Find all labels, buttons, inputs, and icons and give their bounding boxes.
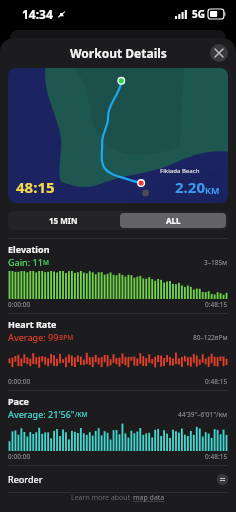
- staticText: Elevation: [8, 243, 50, 255]
- staticText: /KM: [75, 410, 88, 419]
- staticText: Pace: [8, 395, 29, 407]
- staticText: BPM: [59, 333, 74, 342]
- staticText: Gain: 11: [8, 256, 43, 268]
- button[interactable]: ALL: [120, 213, 226, 228]
- staticText: Heart Rate: [8, 318, 57, 330]
- button[interactable]: Close: [210, 44, 228, 62]
- staticText: 15 MIN: [49, 215, 78, 226]
- staticText: 0:48:15: [205, 377, 228, 386]
- staticText: 0:48:15: [205, 300, 228, 309]
- staticText: 5G: [192, 7, 205, 21]
- staticText: Reorder: [8, 473, 43, 485]
- staticText: 48:15: [16, 177, 55, 197]
- staticText: 44'39"–6'01"/км: [178, 410, 228, 419]
- staticText: 3–185м: [204, 258, 228, 267]
- staticText: map data: [133, 493, 165, 503]
- staticText: Workout Details: [70, 45, 167, 61]
- staticText: Average: 21'56": [8, 408, 75, 420]
- staticText: KM: [205, 184, 220, 196]
- staticText: Fikiada Beach: [160, 167, 200, 175]
- button[interactable]: Route map: [8, 68, 228, 203]
- staticText: ALL: [166, 215, 181, 226]
- staticText: 0:00:00: [8, 452, 31, 461]
- staticText: 80–122вPм: [193, 333, 228, 342]
- staticText: 0:00:00: [8, 377, 31, 386]
- button[interactable]: 15 MIN: [10, 213, 116, 228]
- button[interactable]: map data: [133, 493, 165, 503]
- staticText: 2.20: [175, 177, 205, 197]
- staticText: 14:34: [22, 6, 53, 22]
- staticText: 0:00:00: [8, 300, 31, 309]
- staticText: Learn more about: [71, 493, 133, 503]
- staticText: Average: 99: [8, 331, 59, 343]
- staticText: M: [43, 258, 49, 267]
- staticText: 0:48:15: [205, 452, 228, 461]
- button[interactable]: Reorder: [8, 466, 228, 492]
